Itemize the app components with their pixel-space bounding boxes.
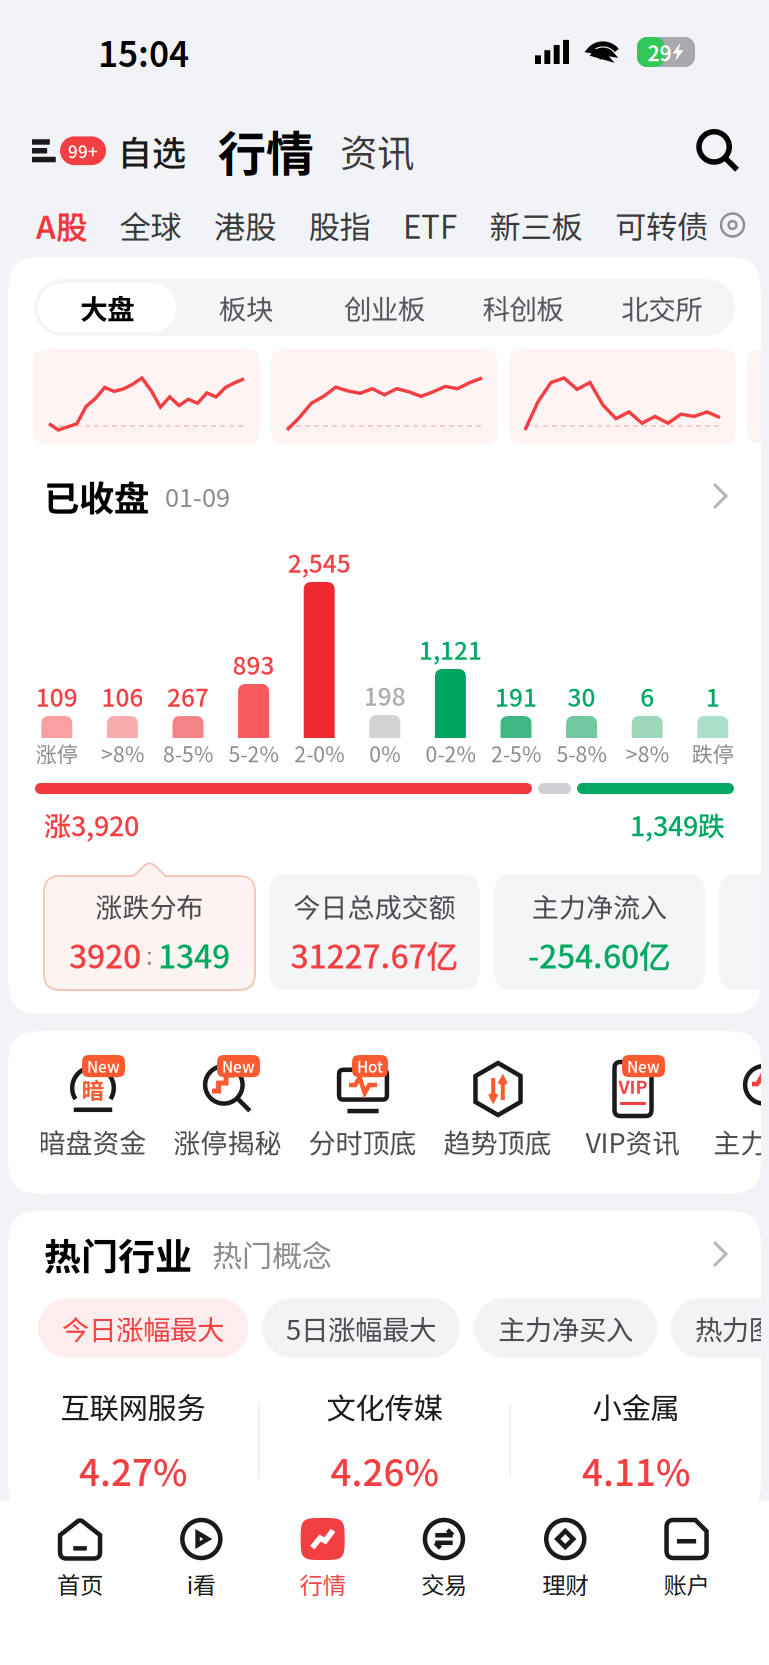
button[interactable]: 主力净流入 (494, 874, 705, 990)
staticText: ETF (403, 202, 457, 248)
staticText: 理财 (542, 1567, 588, 1601)
button[interactable]: 理财 (505, 1501, 626, 1665)
staticText: 1,349跌 (630, 805, 725, 844)
button[interactable]: Hot (295, 1031, 430, 1194)
staticText: 3920 (69, 931, 141, 978)
staticText: i看 (187, 1567, 216, 1601)
button[interactable]: More (713, 1241, 727, 1267)
staticText: 涨停揭秘 (173, 1122, 281, 1161)
staticText: 0% (369, 738, 400, 768)
staticText: 2,545 (288, 544, 351, 580)
button[interactable]: New (160, 1031, 295, 1194)
staticText: 01-09 (165, 478, 230, 514)
button[interactable]: 科创板 (454, 283, 592, 332)
button[interactable]: Menu (32, 136, 106, 165)
button[interactable]: 可转债 (615, 202, 708, 248)
staticText: 6 (640, 678, 654, 714)
button[interactable]: 新三板 (489, 202, 582, 248)
button[interactable]: 板块 (177, 283, 315, 332)
button[interactable]: 交易 (383, 1501, 505, 1665)
button[interactable]: Search (697, 130, 739, 172)
button[interactable]: 今日涨幅最大 (38, 1298, 248, 1358)
staticText: 2-0% (294, 738, 344, 768)
staticText: 分时顶底 (308, 1122, 416, 1161)
staticText: 热门概念 (212, 1232, 332, 1276)
button[interactable]: 涨跌分布 (44, 863, 255, 990)
staticText: New (627, 1055, 660, 1077)
button[interactable]: 已收盘 (8, 472, 761, 520)
staticText: 31227.67亿 (290, 931, 458, 978)
staticText: 8-5% (163, 738, 213, 768)
button[interactable]: A股 (36, 202, 87, 248)
staticText: 2-5% (491, 738, 541, 768)
button[interactable]: 暗 (25, 1031, 160, 1194)
button[interactable]: Settings (720, 212, 745, 237)
button[interactable]: ETF (403, 202, 457, 248)
button[interactable]: 股指 (308, 202, 370, 248)
staticText: 267 (167, 678, 209, 714)
button[interactable]: 资讯 (340, 124, 414, 178)
staticText: New (222, 1055, 255, 1077)
button[interactable]: 文化传媒 (259, 1385, 509, 1497)
staticText: 15:04 (98, 27, 189, 77)
button[interactable]: 5日涨幅最大 (262, 1298, 460, 1358)
staticText: 行情 (300, 1567, 346, 1601)
button[interactable]: 互联网服务 (8, 1385, 258, 1497)
staticText: 今日总成交额 (293, 886, 455, 925)
staticText: 主力资金 (713, 1122, 769, 1161)
button[interactable]: 热力图 (671, 1298, 769, 1358)
staticText: 全球 (119, 202, 181, 248)
button[interactable]: 首页 (19, 1501, 141, 1665)
button[interactable]: 主力资金 (700, 1031, 769, 1194)
staticText: 自选 (118, 126, 186, 175)
staticText: 4.11% (582, 1443, 690, 1497)
button[interactable]: Index chart (747, 349, 769, 444)
staticText: Hot (357, 1055, 383, 1077)
button[interactable]: 北交所 (592, 283, 731, 332)
staticText: 热门行业 (44, 1227, 192, 1281)
staticText: -254.60亿 (528, 931, 671, 978)
staticText: 198 (364, 677, 406, 713)
button[interactable]: 全球 (119, 202, 181, 248)
staticText: 29 (647, 37, 671, 67)
button[interactable]: 行情 (218, 116, 314, 185)
button[interactable]: 账户 (626, 1501, 747, 1665)
button[interactable]: 大盘 (38, 283, 177, 332)
staticText: 小金属 (592, 1385, 679, 1427)
button[interactable]: 主力净买入 (474, 1298, 657, 1358)
staticText: VIP资讯 (585, 1122, 679, 1161)
button[interactable]: Index chart (509, 349, 736, 444)
staticText: 0-2% (425, 738, 475, 768)
button[interactable]: 创业板 (315, 283, 454, 332)
button[interactable]: 小金属 (511, 1385, 761, 1497)
staticText: 新三板 (489, 202, 582, 248)
button[interactable]: i看 (141, 1501, 262, 1665)
button[interactable]: 自选 (118, 126, 186, 175)
staticText: 行情 (218, 116, 314, 185)
staticText: 热力图 (695, 1308, 769, 1348)
button[interactable]: 今日总成交额 (269, 874, 480, 990)
staticText: 板块 (219, 288, 273, 327)
staticText: 暗盘资金 (38, 1122, 146, 1161)
staticText: 99+ (68, 138, 98, 163)
staticText: 科创板 (483, 288, 564, 327)
button[interactable]: 热门概念 (212, 1232, 332, 1276)
staticText: 1349 (158, 931, 230, 978)
staticText: 今日涨幅最大 (62, 1308, 224, 1348)
staticText: 涨停 (36, 738, 78, 768)
button[interactable]: 热门行业 (44, 1227, 192, 1281)
button[interactable]: 行情 (262, 1501, 383, 1665)
staticText: 106 (101, 678, 143, 714)
staticText: VIP (618, 1073, 647, 1099)
staticText: 大盘 (80, 288, 134, 327)
staticText: 5-2% (229, 738, 279, 768)
button[interactable]: 港股 (214, 202, 276, 248)
staticText: 5日涨幅最大 (286, 1308, 436, 1348)
button[interactable]: 趋势顶底 (430, 1031, 565, 1194)
button[interactable]: VIP (565, 1031, 700, 1194)
button[interactable]: Index chart (271, 349, 498, 444)
staticText: 4.26% (330, 1443, 438, 1497)
staticText: 109 (36, 678, 78, 714)
button[interactable]: Index chart (33, 349, 260, 444)
